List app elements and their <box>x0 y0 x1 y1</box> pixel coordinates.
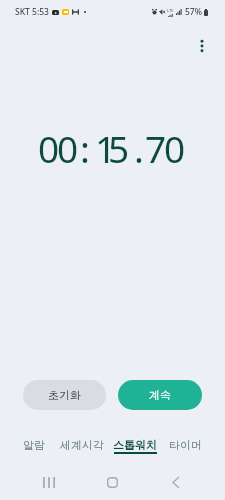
staticText: 0 <box>38 123 58 169</box>
button[interactable]: 초기화 <box>23 380 106 410</box>
button[interactable]: Home <box>96 466 128 498</box>
staticText: 7 <box>145 123 165 169</box>
button[interactable]: 세계시각 <box>56 438 108 464</box>
button[interactable]: 알람 <box>8 438 60 464</box>
staticText: 5 <box>108 123 128 169</box>
staticText: 스톱워치 <box>113 438 157 452</box>
staticText: . <box>129 123 149 169</box>
staticText: 0 <box>57 123 77 169</box>
button[interactable]: 스톱워치 <box>109 438 161 464</box>
staticText: 계속 <box>149 388 171 402</box>
button[interactable]: Back <box>160 466 192 498</box>
button[interactable]: 타이머 <box>159 438 211 464</box>
staticText: 타이머 <box>169 438 202 452</box>
button[interactable]: More options <box>189 33 215 59</box>
staticText: 초기화 <box>48 388 81 402</box>
staticText: SKT 5:53 <box>15 6 49 18</box>
staticText: 1 <box>95 123 115 169</box>
button[interactable]: Recent apps <box>33 466 65 498</box>
staticText: 0 <box>164 123 184 169</box>
button[interactable]: 계속 <box>118 380 202 410</box>
staticText: 알람 <box>23 438 45 452</box>
other: 00:15.70 <box>0 123 225 169</box>
staticText: LTE <box>167 8 174 13</box>
staticText: 세계시각 <box>60 438 104 452</box>
staticText: 57% <box>185 6 202 18</box>
staticText: : <box>75 123 95 169</box>
